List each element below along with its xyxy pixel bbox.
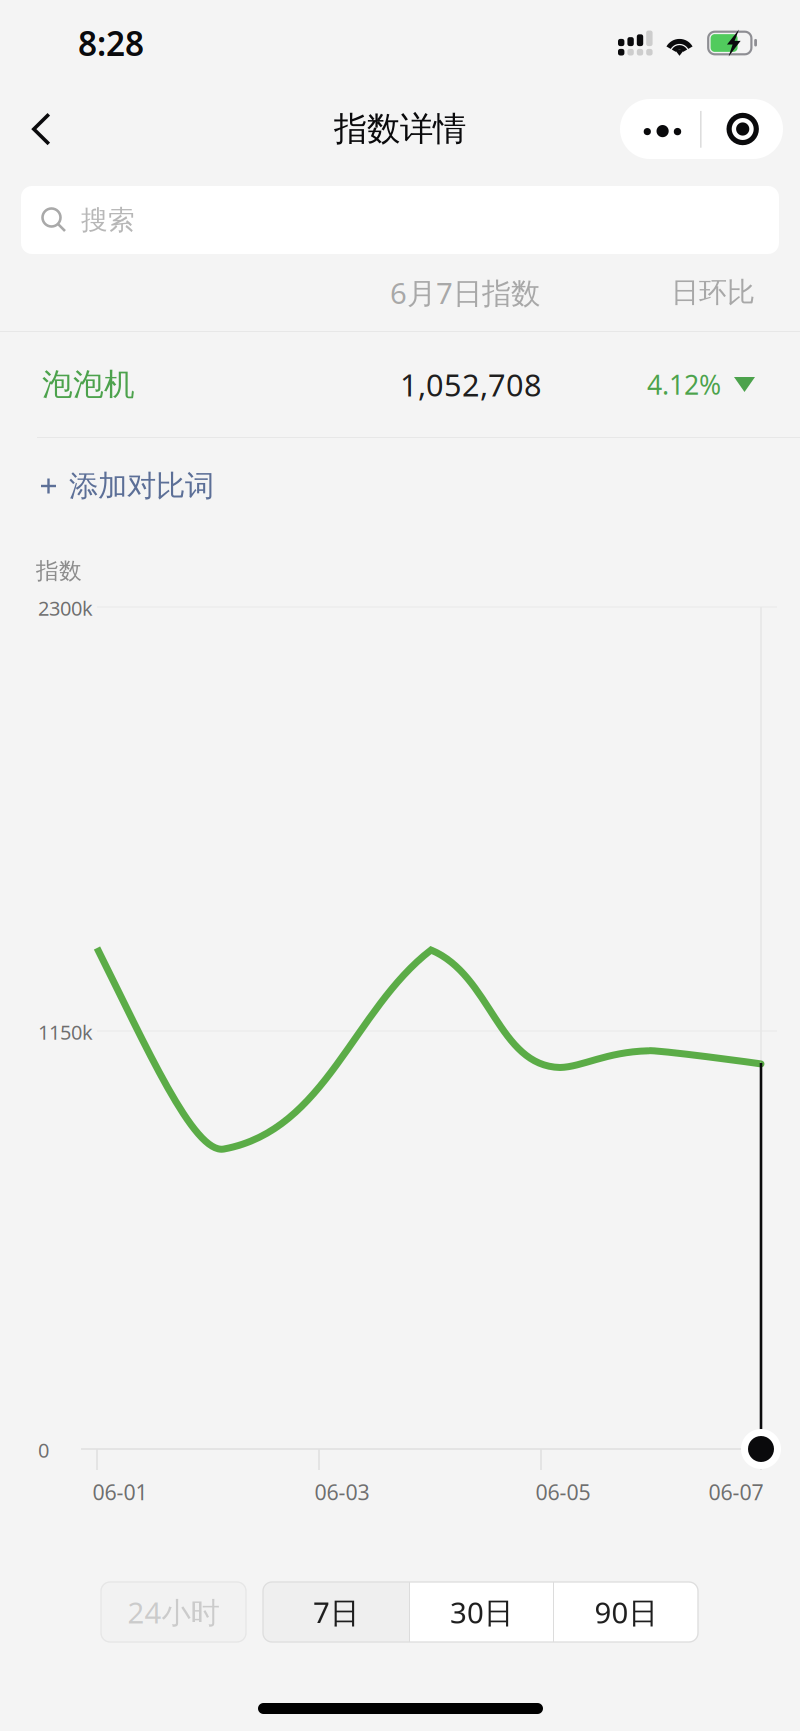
staticText: 搜索 xyxy=(81,204,135,236)
staticText: 06-03 xyxy=(314,1478,369,1506)
staticText: 6月7日指数 xyxy=(390,273,540,312)
staticText: 7日 xyxy=(313,1592,359,1631)
staticText: 4.12% xyxy=(647,367,721,402)
staticText: 8:28 xyxy=(78,21,144,65)
button[interactable]: 7日 xyxy=(263,1582,409,1642)
staticText: 指数详情 xyxy=(334,108,466,149)
staticText: 泡泡机 xyxy=(42,366,135,403)
staticText: 指数 xyxy=(36,557,82,585)
button[interactable]: 添加对比词 xyxy=(0,438,800,534)
button[interactable]: 30日 xyxy=(410,1582,553,1642)
staticText: 06-01 xyxy=(92,1478,147,1506)
button[interactable]: 24小时 xyxy=(101,1582,246,1642)
staticText: 日环比 xyxy=(671,275,755,310)
staticText: 1,052,708 xyxy=(400,364,542,405)
staticText: 06-05 xyxy=(535,1478,590,1506)
button[interactable]: 90日 xyxy=(554,1582,698,1642)
staticText: 30日 xyxy=(450,1592,513,1631)
button[interactable]: Back xyxy=(9,86,73,172)
staticText: 0 xyxy=(38,1437,49,1463)
button[interactable]: More options and mini program menu xyxy=(620,99,783,159)
staticText: 06-07 xyxy=(708,1478,763,1506)
button[interactable]: 搜索 xyxy=(0,172,800,254)
staticText: 24小时 xyxy=(127,1592,219,1631)
staticText: 2300k xyxy=(38,595,93,621)
staticText: 添加对比词 xyxy=(69,468,214,504)
staticText: 90日 xyxy=(594,1592,657,1631)
button[interactable]: 泡泡机 xyxy=(0,332,800,438)
staticText: 1150k xyxy=(38,1019,93,1045)
